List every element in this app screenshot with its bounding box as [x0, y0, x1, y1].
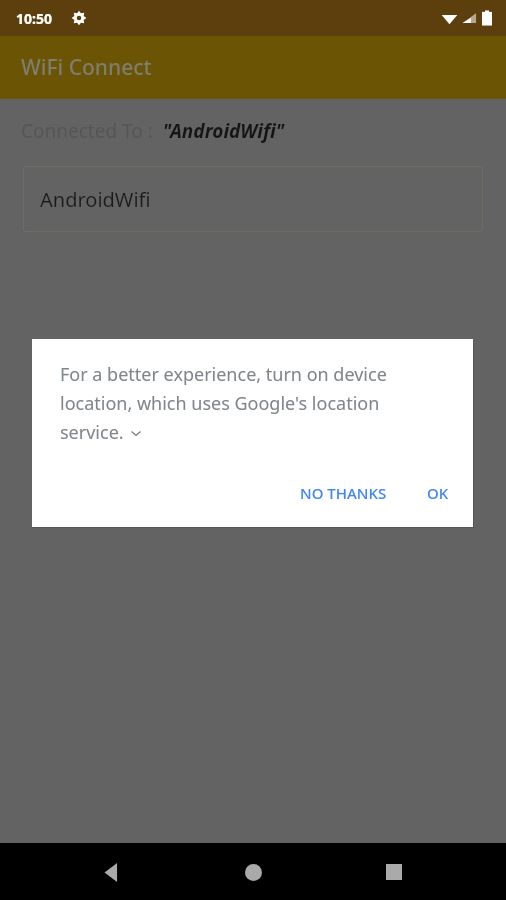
- staticText: 10:50: [16, 9, 52, 28]
- button[interactable]: NO THANKS: [290, 473, 397, 513]
- button[interactable]: OK: [417, 473, 459, 513]
- staticText: WiFi Connect: [21, 53, 152, 82]
- staticText: service.: [60, 420, 124, 445]
- staticText: For a better experience, turn on device: [60, 362, 387, 387]
- button[interactable]: Recent apps: [372, 850, 416, 894]
- staticText: NO THANKS: [300, 483, 387, 503]
- button[interactable]: AndroidWifi: [23, 166, 483, 232]
- staticText: AndroidWifi: [40, 186, 151, 213]
- button[interactable]: Back: [90, 850, 134, 894]
- staticText: OK: [427, 483, 449, 503]
- staticText: Connected To : "AndroidWifi": [21, 118, 285, 144]
- staticText: location, which uses Google's location: [60, 391, 380, 416]
- other: Expand: [130, 427, 142, 439]
- button[interactable]: Home: [231, 850, 275, 894]
- other: Settings: [71, 10, 87, 26]
